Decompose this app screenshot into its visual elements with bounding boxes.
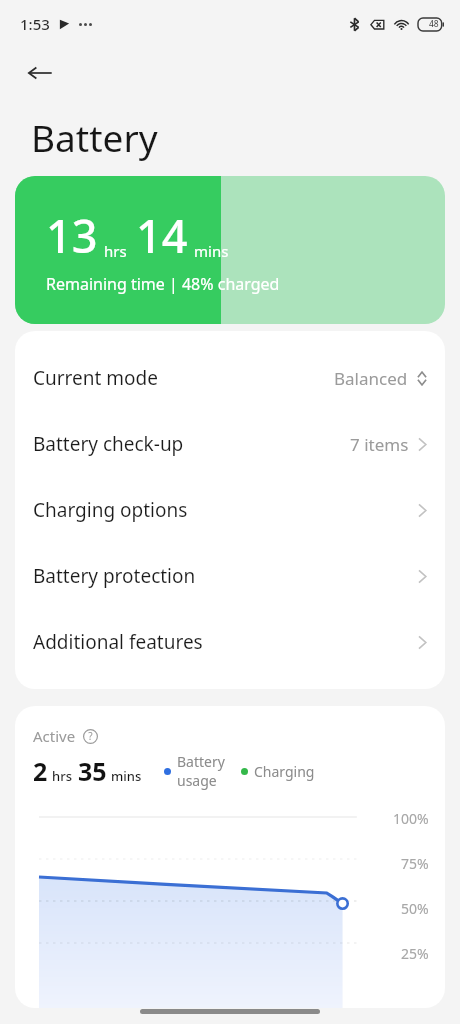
staticText: Charging options [33, 497, 188, 523]
button[interactable]: Additional features [15, 609, 445, 675]
staticText: Current mode [33, 365, 158, 391]
staticText: Battery protection [33, 563, 196, 589]
button[interactable]: Back [18, 51, 62, 95]
staticText: Balanced [334, 367, 408, 390]
staticText: hrs [104, 241, 127, 261]
staticText: 1:53 [20, 14, 50, 34]
staticText: mins [194, 241, 229, 261]
button[interactable]: Battery check-up [15, 411, 445, 477]
staticText: Remaining time | 48% charged [46, 273, 280, 295]
staticText: 50% [401, 899, 429, 918]
staticText: Battery check-up [33, 431, 184, 457]
staticText: 2 [33, 754, 48, 788]
button[interactable]: Charging options [15, 477, 445, 543]
staticText: ? [88, 729, 93, 743]
staticText: 25% [401, 944, 429, 963]
button[interactable]: 13 [15, 176, 445, 324]
staticText: 14 [136, 205, 188, 266]
staticText: 75% [401, 854, 429, 873]
button[interactable]: Help about active time [82, 728, 98, 744]
staticText: Battery usage [177, 752, 225, 790]
button[interactable]: Battery protection [15, 543, 445, 609]
staticText: Additional features [33, 629, 203, 655]
staticText: mins [111, 767, 142, 785]
button[interactable]: Current mode [15, 345, 445, 411]
staticText: Active [33, 726, 76, 746]
staticText: 7 items [350, 433, 409, 456]
staticText: 48 [429, 18, 439, 30]
staticText: hrs [52, 767, 72, 785]
staticText: 13 [46, 205, 98, 266]
staticText: 100% [393, 809, 429, 828]
staticText: Charging [254, 762, 315, 781]
staticText: 35 [78, 754, 107, 788]
staticText: Battery [31, 112, 158, 162]
